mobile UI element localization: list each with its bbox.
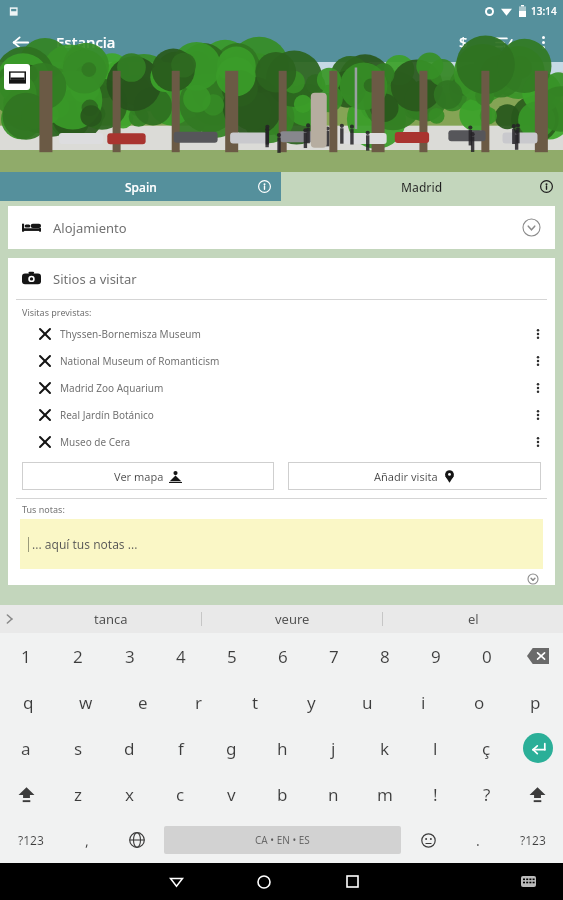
button[interactable]: 1 — [0, 633, 52, 679]
button[interactable]: m — [359, 771, 410, 817]
button[interactable]: 9 — [410, 633, 461, 679]
button[interactable]: Thyssen-Bornemisza Museum — [8, 320, 555, 347]
button[interactable]: r — [171, 679, 227, 725]
staticText: j — [331, 737, 336, 760]
staticText: 4 — [176, 645, 186, 668]
button[interactable]: Change language — [112, 817, 162, 863]
button[interactable]: 7 — [308, 633, 359, 679]
button[interactable]: Ver mapa — [22, 462, 274, 490]
button[interactable]: ?123 — [503, 817, 563, 863]
staticText: 8 — [380, 645, 390, 668]
button[interactable]: Home — [220, 863, 308, 900]
button[interactable]: Shift — [512, 771, 563, 817]
button[interactable]: Madrid Zoo Aquarium — [8, 374, 555, 401]
button[interactable]: Añadir visita — [288, 462, 541, 490]
staticText: Madrid Zoo Aquarium — [60, 381, 164, 395]
button[interactable]: Change photo — [4, 64, 30, 90]
button[interactable]: x — [104, 771, 155, 817]
button[interactable]: Spain — [0, 172, 281, 201]
staticText: d — [124, 737, 135, 760]
button[interactable]: 3 — [104, 633, 155, 679]
button[interactable]: Alojamiento — [8, 206, 555, 249]
button[interactable]: t — [227, 679, 283, 725]
button[interactable]: 5 — [206, 633, 257, 679]
staticText: e — [138, 691, 148, 714]
staticText: ?123 — [520, 832, 546, 848]
button[interactable]: Checklist — [483, 22, 523, 62]
button[interactable]: u — [339, 679, 395, 725]
button[interactable]: tanca — [20, 605, 201, 633]
button[interactable]: CA • EN • ES — [164, 826, 401, 854]
button[interactable]: Options — [525, 402, 551, 428]
button[interactable]: b — [257, 771, 308, 817]
button[interactable]: w — [57, 679, 114, 725]
button[interactable]: Back — [0, 22, 40, 62]
button[interactable]: Recents — [308, 863, 396, 900]
staticText: Ver mapa — [114, 469, 164, 484]
staticText: i — [421, 691, 426, 714]
button[interactable]: Options — [525, 429, 551, 455]
button[interactable]: Madrid — [281, 172, 563, 201]
button[interactable]: ?123 — [0, 817, 61, 863]
button[interactable]: g — [206, 725, 257, 771]
button[interactable]: c — [155, 771, 206, 817]
staticText: p — [530, 691, 541, 714]
staticText: y — [307, 691, 316, 714]
button[interactable]: d — [104, 725, 155, 771]
staticText: 0 — [482, 645, 492, 668]
staticText: b — [277, 783, 288, 806]
button[interactable]: q — [0, 679, 57, 725]
button[interactable]: f — [155, 725, 206, 771]
staticText: z — [74, 783, 82, 806]
button[interactable]: 8 — [359, 633, 410, 679]
button[interactable]: l — [410, 725, 461, 771]
staticText: v — [227, 783, 236, 806]
button[interactable]: j — [308, 725, 359, 771]
button[interactable]: e — [114, 679, 171, 725]
button[interactable]: y — [283, 679, 339, 725]
button[interactable]: 4 — [155, 633, 206, 679]
button[interactable]: Shift — [0, 771, 52, 817]
staticText: Sitios a visitar — [53, 270, 137, 288]
button[interactable]: ç — [461, 725, 512, 771]
staticText: 9 — [431, 645, 441, 668]
button[interactable]: Back — [132, 863, 220, 900]
button[interactable]: Options — [525, 348, 551, 374]
button[interactable]: v — [206, 771, 257, 817]
button[interactable]: o — [451, 679, 507, 725]
button[interactable]: i — [395, 679, 451, 725]
button[interactable]: , — [61, 817, 112, 863]
button[interactable]: Backspace — [512, 633, 563, 679]
button[interactable]: s — [52, 725, 104, 771]
button[interactable]: National Museum of Romanticism — [8, 347, 555, 374]
button[interactable]: el — [383, 605, 563, 633]
button[interactable]: veure — [202, 605, 382, 633]
button[interactable]: Options — [525, 321, 551, 347]
button[interactable]: 2 — [52, 633, 104, 679]
button[interactable]: ! — [410, 771, 461, 817]
button[interactable]: n — [308, 771, 359, 817]
button[interactable]: More options — [523, 22, 563, 62]
staticText: Real Jardín Botánico — [60, 408, 154, 422]
button[interactable]: Real Jardín Botánico — [8, 401, 555, 428]
button[interactable]: p — [507, 679, 563, 725]
button[interactable]: Emoji — [403, 817, 453, 863]
staticText: a — [21, 737, 31, 760]
button[interactable]: Expenses — [443, 22, 483, 62]
button[interactable]: Hide keyboard — [493, 863, 563, 900]
button[interactable]: ? — [461, 771, 512, 817]
button[interactable]: Sitios a visitar — [22, 258, 541, 299]
button[interactable]: k — [359, 725, 410, 771]
button[interactable]: Enter — [512, 725, 563, 771]
button[interactable]: 0 — [461, 633, 512, 679]
button[interactable]: . — [453, 817, 503, 863]
button[interactable]: ... aquí tus notas ... — [20, 519, 543, 569]
button[interactable]: Options — [525, 375, 551, 401]
button[interactable]: 6 — [257, 633, 308, 679]
button[interactable]: a — [0, 725, 52, 771]
button[interactable]: Museo de Cera — [8, 428, 555, 455]
button[interactable]: h — [257, 725, 308, 771]
staticText: q — [23, 691, 34, 714]
button[interactable]: z — [52, 771, 104, 817]
staticText: 2 — [73, 645, 83, 668]
